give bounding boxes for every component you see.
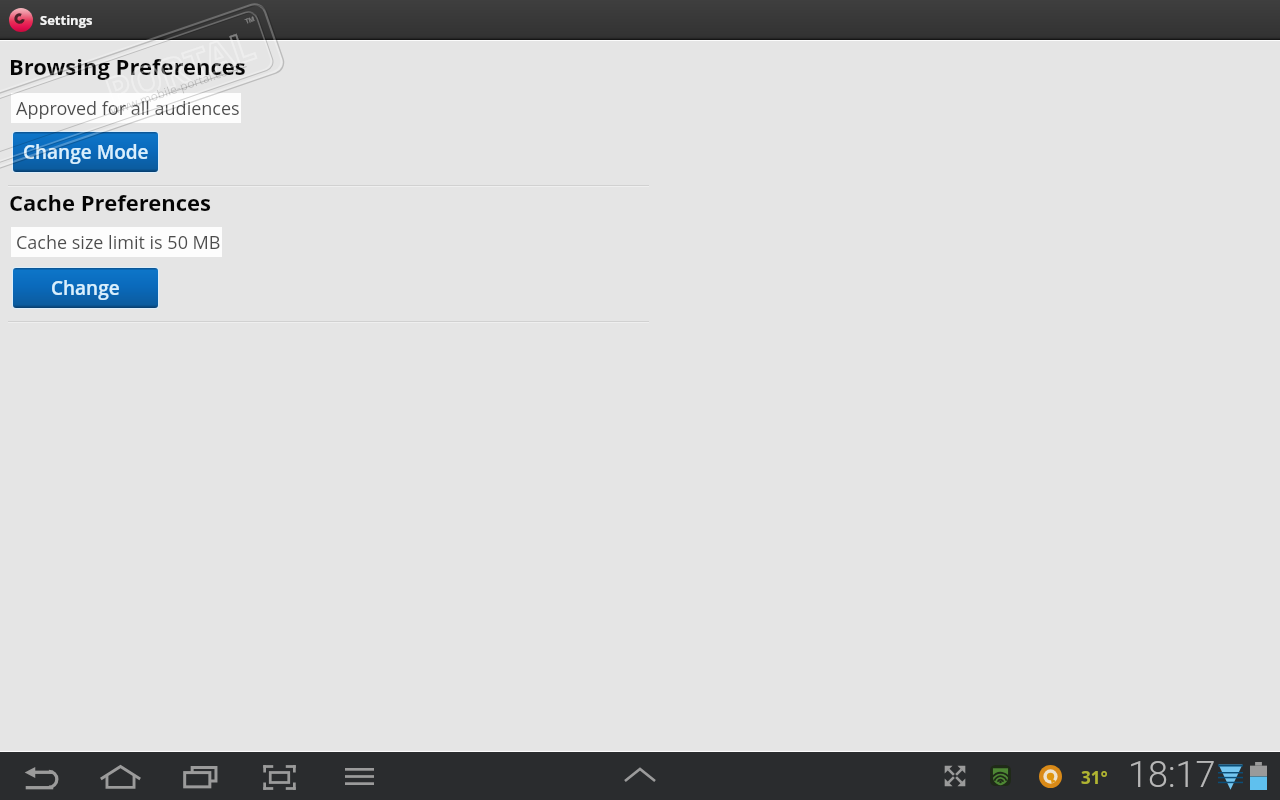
staticText: PORTAL [98,17,261,118]
button[interactable]: Screenshot [263,765,296,790]
button[interactable]: Recent apps [184,765,218,788]
staticText: 31° [1081,766,1108,789]
staticText: Cache Preferences [9,187,211,217]
staticText: 18:17 [1128,754,1216,796]
staticText: Change [51,275,120,301]
staticText: ™ [243,11,259,32]
staticText: Change Mode [23,139,149,165]
button[interactable]: Menu [345,768,374,785]
staticText: Cache size limit is 50 MB [16,230,221,255]
staticText: www.mobile-portal.com [108,59,240,118]
staticText: Settings [40,11,93,29]
button[interactable]: Change Mode [12,131,159,173]
button[interactable]: Show status bar [624,767,656,783]
staticText: Approved for all audiences [16,96,240,121]
button[interactable]: Change [12,267,159,309]
button[interactable]: Full screen [944,765,966,787]
button[interactable]: Home [100,765,141,789]
button[interactable]: Wi-Fi protection [990,765,1011,786]
button[interactable]: Back [24,767,58,789]
staticText: Browsing Preferences [9,51,246,81]
button[interactable]: Sync status [1039,765,1062,788]
